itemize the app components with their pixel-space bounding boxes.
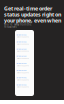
staticText: Order #1042 (17, 84, 27, 86)
staticText: you're away from the (4, 23, 32, 26)
staticText: Delivered 2:30 PM (17, 65, 29, 66)
staticText: Delivered 2:30 PM (17, 58, 29, 59)
staticText: Delivered 2:30 PM (17, 72, 29, 74)
staticText: Order #1042 (17, 48, 27, 50)
staticText: Order #1042 (17, 77, 27, 79)
staticText: Order #1042 (17, 70, 27, 71)
staticText: Order #1042 (17, 55, 27, 57)
staticText: Order #1042 (17, 41, 27, 43)
staticText: Order #1042 (17, 34, 27, 36)
staticText: restaurant (4, 25, 17, 28)
staticText: Delivered 2:30 PM (17, 43, 29, 45)
staticText: Delivered 2:30 PM (17, 50, 29, 52)
staticText: Get real-time order (4, 5, 52, 12)
staticText: status updates right on (4, 11, 61, 18)
staticText: your phone, even when (4, 17, 61, 24)
staticText: Order #1042 (17, 63, 27, 64)
